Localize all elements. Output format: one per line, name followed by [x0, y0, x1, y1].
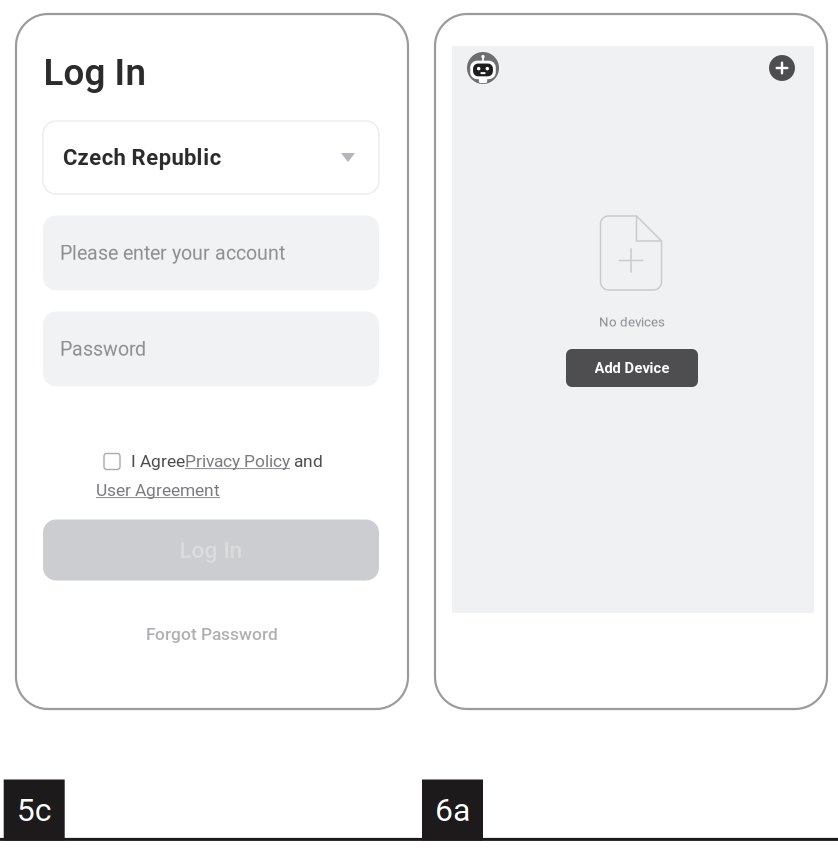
- staticText: 6a: [435, 791, 470, 829]
- button[interactable]: Please enter your account: [43, 215, 379, 290]
- staticText: Privacy Policy: [185, 451, 290, 471]
- button[interactable]: Forgot Password: [146, 624, 278, 644]
- button[interactable]: Agree to terms: [104, 453, 120, 469]
- button[interactable]: Czech Republic: [43, 121, 379, 194]
- staticText: Log In: [179, 537, 242, 563]
- staticText: No devices: [599, 314, 665, 330]
- staticText: and: [290, 451, 323, 471]
- button[interactable]: Password: [43, 311, 379, 386]
- button[interactable]: Assistant: [467, 52, 499, 84]
- button[interactable]: Add Device: [566, 349, 698, 387]
- staticText: User Agreement: [96, 480, 220, 500]
- button[interactable]: Privacy Policy: [185, 451, 290, 471]
- button[interactable]: Log In: [43, 519, 379, 580]
- staticText: 5c: [17, 791, 52, 829]
- button[interactable]: User Agreement: [96, 479, 236, 501]
- staticText: Add Device: [594, 359, 669, 377]
- staticText: Forgot Password: [146, 624, 278, 644]
- button[interactable]: Add device: [769, 55, 795, 81]
- staticText: Please enter your account: [60, 241, 285, 264]
- staticText: Czech Republic: [63, 145, 221, 170]
- staticText: Log In: [43, 51, 145, 94]
- staticText: I Agree: [131, 451, 185, 471]
- staticText: Password: [60, 337, 146, 360]
